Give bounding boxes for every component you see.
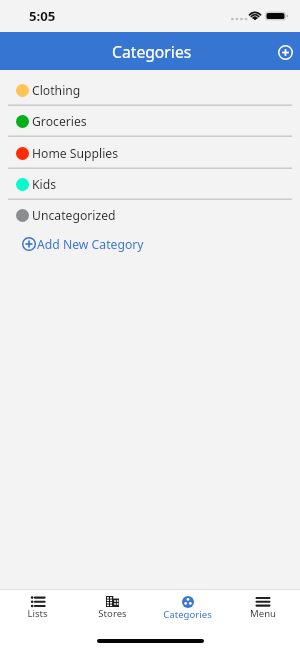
staticText: Kids	[32, 176, 57, 193]
button[interactable]: Menu	[225, 590, 300, 621]
staticText: Stores	[98, 607, 127, 620]
button[interactable]: Clothing	[0, 74, 300, 106]
staticText: Clothing	[32, 82, 81, 99]
button[interactable]: Categories	[150, 590, 225, 622]
button[interactable]: Lists	[0, 590, 75, 621]
staticText: Uncategorized	[32, 207, 116, 224]
staticText: Menu	[250, 607, 276, 620]
button[interactable]: Groceries	[0, 106, 300, 137]
staticText: Groceries	[32, 113, 87, 130]
staticText: 5:05	[29, 7, 56, 25]
button[interactable]: Add New Category	[0, 231, 300, 263]
button[interactable]: Uncategorized	[0, 200, 300, 231]
staticText: Categories	[163, 608, 212, 621]
button[interactable]: Home Supplies	[0, 137, 300, 169]
button[interactable]: Stores	[75, 590, 150, 621]
button[interactable]: Add category	[271, 37, 300, 66]
staticText: Lists	[27, 607, 48, 620]
button[interactable]: Kids	[0, 169, 300, 200]
staticText: Add New Category	[37, 236, 144, 253]
staticText: Categories	[112, 41, 192, 62]
staticText: Home Supplies	[32, 145, 119, 162]
